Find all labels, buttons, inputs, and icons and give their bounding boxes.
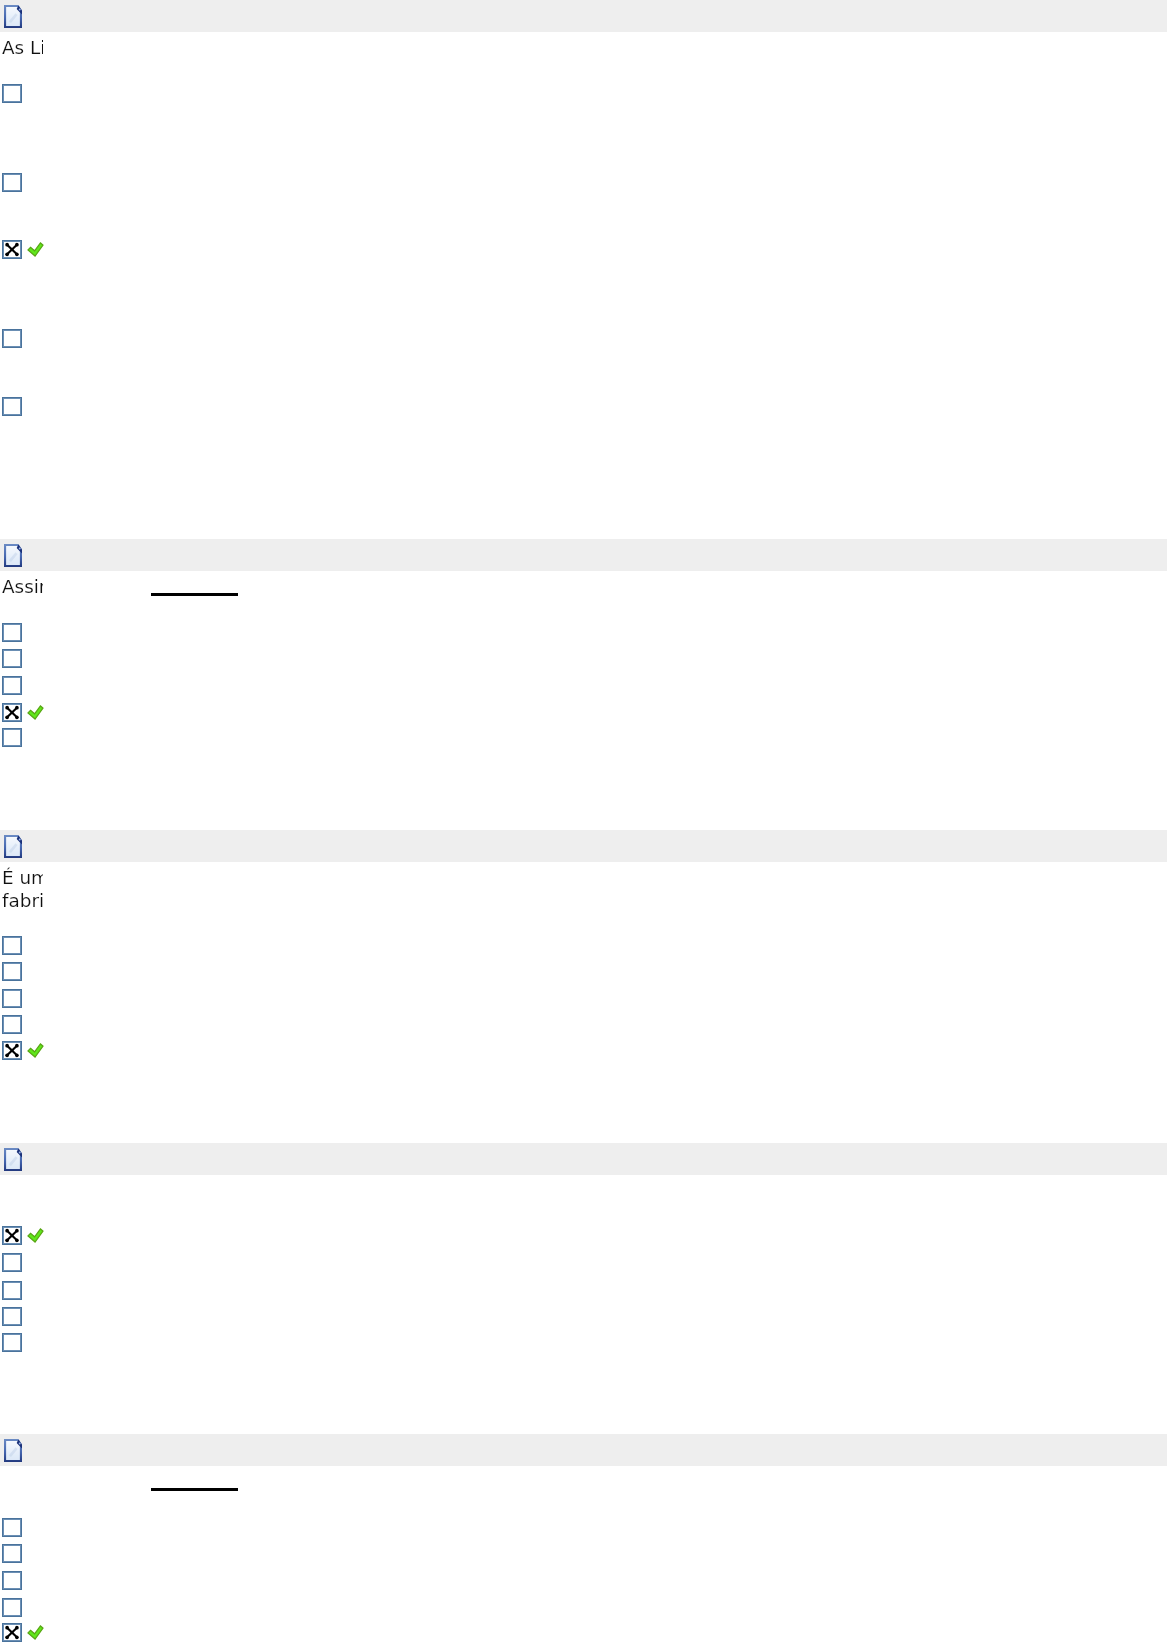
button[interactable]: Document	[0, 830, 1167, 862]
other: Document	[4, 1148, 22, 1171]
button[interactable]: Selected option checkbox	[2, 1226, 22, 1245]
other: Document	[4, 544, 22, 567]
staticText: As Ligas Metalicas	[2, 37, 43, 58]
button[interactable]: Document	[0, 0, 1167, 32]
button[interactable]: Option checkbox	[2, 1307, 22, 1326]
button[interactable]: Option checkbox	[2, 1571, 22, 1590]
button[interactable]: Selected option checkbox	[2, 703, 22, 722]
button[interactable]: Document	[0, 539, 1167, 571]
button[interactable]: Option checkbox	[2, 1015, 22, 1034]
button[interactable]: Selected option checkbox	[2, 1041, 22, 1060]
button[interactable]: Option checkbox	[2, 962, 22, 981]
button[interactable]: Option checkbox	[2, 623, 22, 642]
button[interactable]: Option checkbox	[2, 1253, 22, 1272]
button[interactable]: Option checkbox	[2, 173, 22, 192]
button[interactable]: Selected option checkbox	[2, 240, 22, 259]
button[interactable]: Option checkbox	[2, 84, 22, 103]
button[interactable]: Option checkbox	[2, 329, 22, 348]
button[interactable]: Selected option checkbox	[2, 1623, 22, 1642]
other: Correct answer	[28, 1229, 43, 1242]
button[interactable]: Document	[0, 1143, 1167, 1175]
other: Correct answer	[28, 706, 43, 719]
button[interactable]: Option checkbox	[2, 1518, 22, 1537]
other: Correct answer	[28, 243, 43, 256]
staticText: É um processo de	[2, 867, 43, 888]
staticText: fabricacao que	[2, 890, 43, 911]
button[interactable]: Option checkbox	[2, 936, 22, 955]
other: Correct answer	[28, 1044, 43, 1057]
button[interactable]: Option checkbox	[2, 1281, 22, 1300]
staticText: Assinale a alternativa	[2, 576, 43, 597]
other: Document	[4, 835, 22, 858]
button[interactable]: Option checkbox	[2, 649, 22, 668]
button[interactable]: Option checkbox	[2, 397, 22, 416]
button[interactable]: Option checkbox	[2, 676, 22, 695]
other: Document	[4, 5, 22, 28]
button[interactable]: Option checkbox	[2, 728, 22, 747]
other: Correct answer	[28, 1626, 43, 1639]
button[interactable]: Option checkbox	[2, 1598, 22, 1617]
button[interactable]: Document	[0, 1434, 1167, 1466]
button[interactable]: Option checkbox	[2, 989, 22, 1008]
button[interactable]: Option checkbox	[2, 1333, 22, 1352]
other: Document	[4, 1439, 22, 1462]
button[interactable]: Option checkbox	[2, 1544, 22, 1563]
